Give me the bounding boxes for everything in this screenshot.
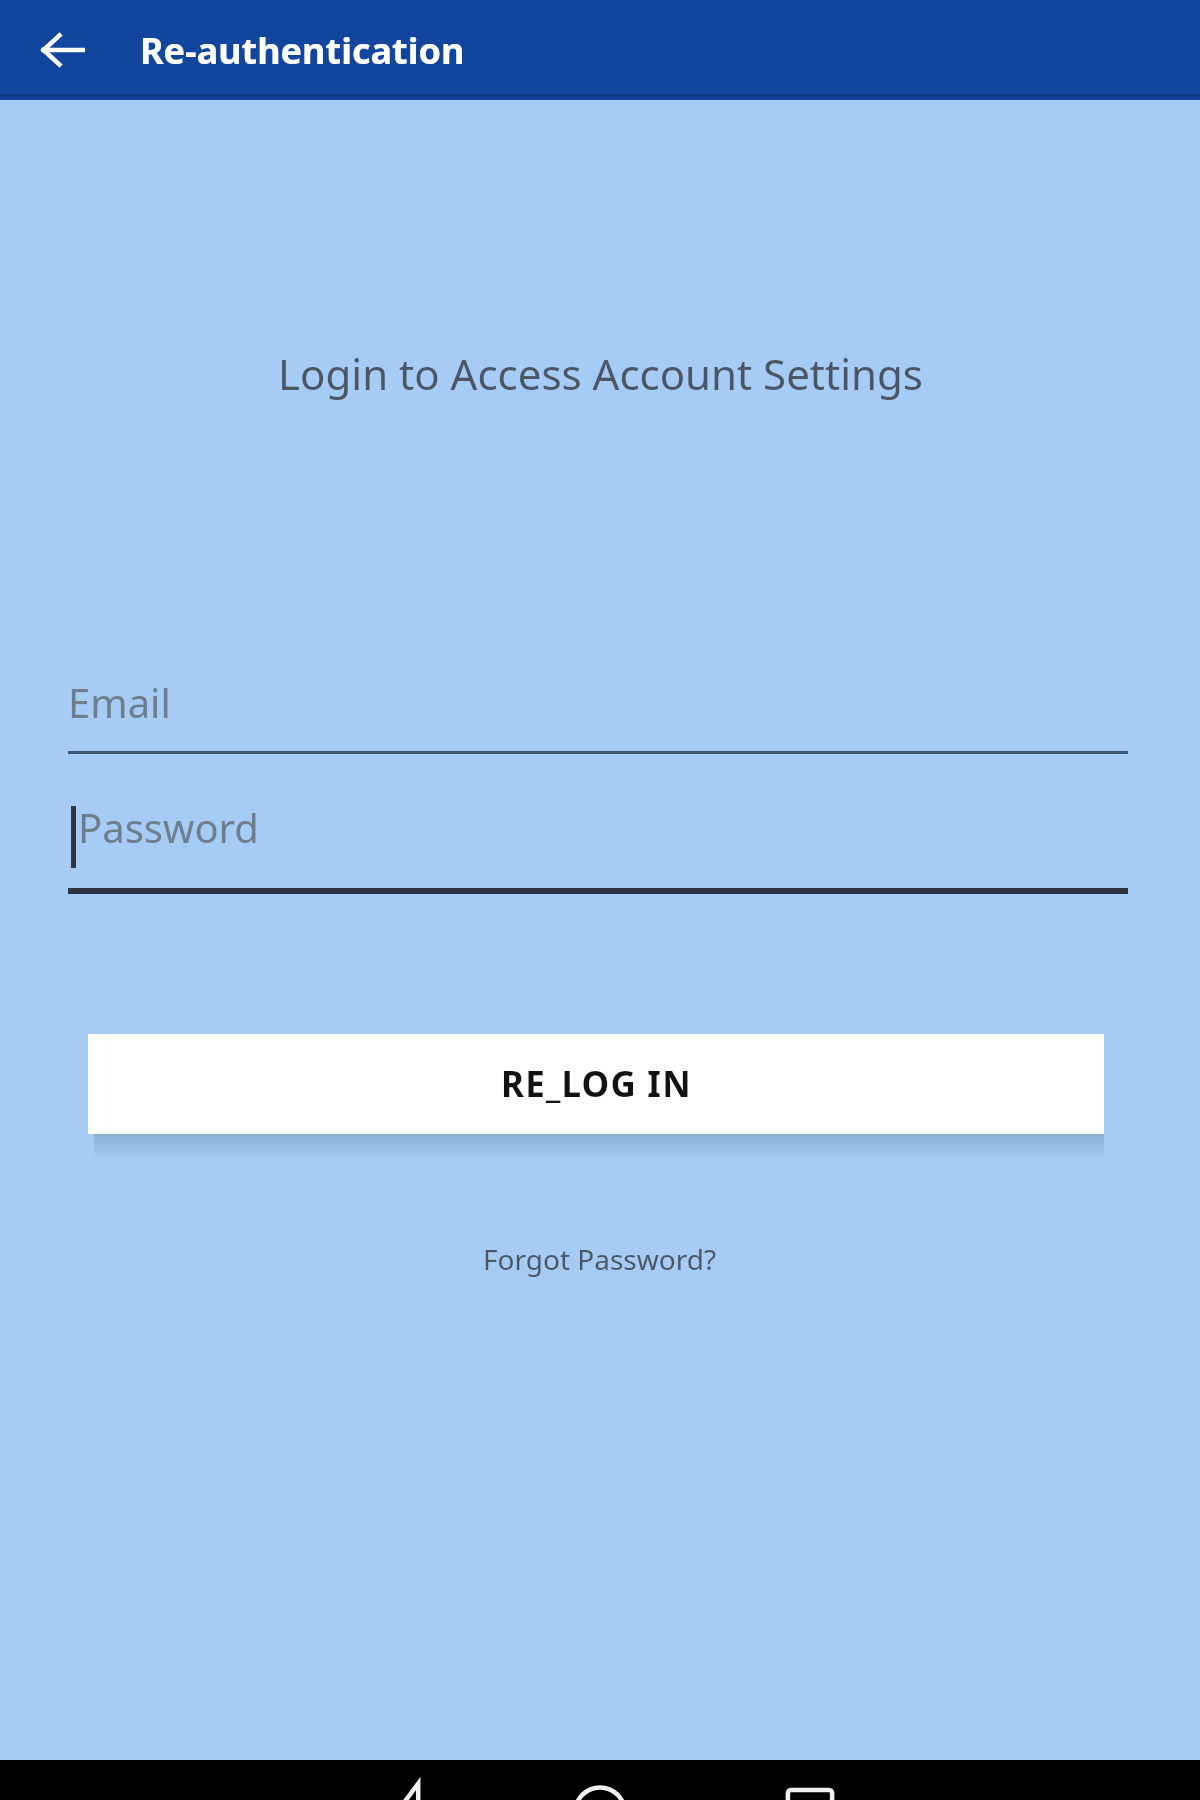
staticText: Password xyxy=(78,800,259,854)
button[interactable]: Forgot Password? xyxy=(469,1232,731,1286)
staticText: Login to Access Account Settings xyxy=(278,345,923,402)
staticText: Forgot Password? xyxy=(483,1240,717,1278)
button[interactable]: Back xyxy=(22,9,104,91)
button[interactable]: RE_LOG IN xyxy=(88,1034,1104,1134)
staticText: Re-authentication xyxy=(140,26,465,75)
button[interactable]: Email xyxy=(68,675,1128,754)
staticText: RE_LOG IN xyxy=(501,1060,692,1108)
staticText: Email xyxy=(68,675,171,729)
button[interactable]: Password xyxy=(68,800,1128,1000)
